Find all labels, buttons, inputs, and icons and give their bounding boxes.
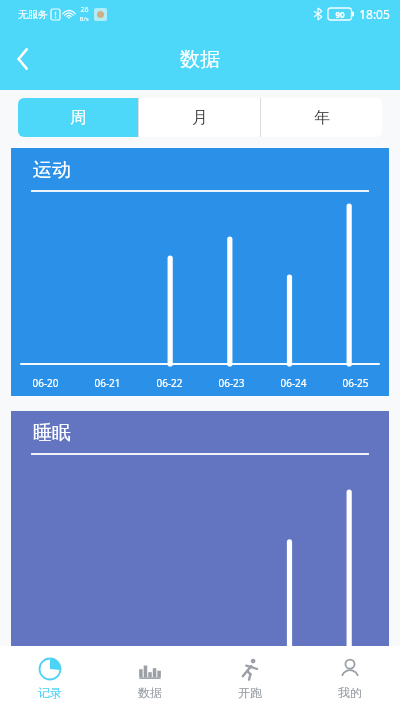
staticText: 18:05 <box>359 6 390 22</box>
staticText: 06-20 <box>32 376 59 390</box>
button[interactable]: Back <box>0 37 44 81</box>
staticText: 数据 <box>180 47 220 72</box>
staticText: 06-24 <box>280 376 307 390</box>
staticText: 数据 <box>138 685 162 700</box>
staticText: 我的 <box>338 685 362 700</box>
staticText: B/s <box>79 15 89 23</box>
button[interactable]: 年 <box>261 98 382 137</box>
staticText: 无服务 <box>18 8 48 21</box>
staticText: 90 <box>335 9 345 20</box>
staticText: 月 <box>192 108 208 128</box>
button[interactable]: 周 <box>18 98 138 137</box>
button[interactable]: 睡眠 <box>11 411 389 661</box>
button[interactable]: 数据 <box>100 646 200 710</box>
staticText: 26 <box>80 5 89 15</box>
staticText: 06-23 <box>218 376 245 390</box>
staticText: 记录 <box>38 685 62 700</box>
button[interactable]: 开跑 <box>200 646 300 710</box>
staticText: 运动 <box>33 158 71 182</box>
button[interactable]: 我的 <box>300 646 400 710</box>
staticText: 周 <box>70 108 86 128</box>
staticText: 06-25 <box>342 376 369 390</box>
button[interactable]: 记录 <box>0 646 100 710</box>
button[interactable]: 月 <box>139 98 260 137</box>
staticText: 年 <box>314 108 330 128</box>
staticText: 睡眠 <box>33 421 71 445</box>
button[interactable]: 运动 <box>11 148 389 396</box>
staticText: 06-21 <box>94 376 121 390</box>
staticText: 06-22 <box>156 376 183 390</box>
staticText: 开跑 <box>238 685 262 700</box>
